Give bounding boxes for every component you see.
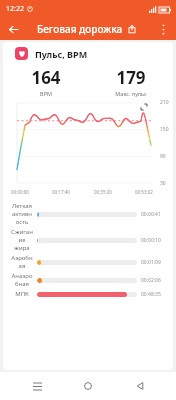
staticText: 30 [160,180,166,187]
staticText: 90 [160,153,166,160]
button[interactable]: МПК [11,290,167,298]
staticText: 150 [160,126,169,133]
staticText: 164 [31,66,61,89]
staticText: 210 [160,99,169,106]
button[interactable]: Home [73,372,103,400]
staticText: 00:17:40 [52,189,70,195]
staticText: BPM [40,90,52,97]
staticText: 00:53:02 [135,189,153,195]
staticText: 00:35:20 [94,189,112,195]
button[interactable]: Recent apps [22,372,52,400]
staticText: 00:00:10 [141,237,161,244]
staticText: Пульс, BPM [35,48,88,60]
staticText: 179 [116,66,146,89]
staticText: 00:02:06 [141,277,161,284]
staticText: Легкая активность [11,202,33,226]
staticText: 00:00:41 [141,211,161,218]
staticText: Аэробная [11,254,33,270]
staticText: 00:01:09 [141,259,161,266]
staticText: Сжигание жира [11,228,33,252]
button[interactable]: Share [125,22,139,36]
button[interactable]: Аэробная [11,254,167,270]
button[interactable]: Back [3,19,23,39]
button[interactable]: Анаэробная [11,272,167,288]
staticText: Макс. пульс [115,90,147,97]
button[interactable]: More options [154,20,172,38]
button[interactable]: Легкая активность [11,202,167,226]
button[interactable]: Expand chart [138,101,149,112]
button[interactable]: Сжигание жира [11,228,167,252]
button[interactable]: Back [125,372,155,400]
staticText: Беговая дорожка [37,22,123,36]
staticText: МПК [15,290,29,298]
staticText: 12:22 [6,4,24,14]
staticText: 00:00:00 [11,189,29,195]
button[interactable]: Пульс, BPM [15,47,173,60]
staticText: 00:48:35 [141,291,161,298]
staticText: Анаэробная [11,272,33,288]
